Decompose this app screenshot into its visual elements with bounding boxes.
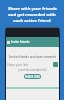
staticText: Invite friends <box>11 40 30 44</box>
staticText: Share your link <box>7 63 29 67</box>
staticText: and get rewarded with <box>8 12 56 18</box>
staticText: yourlink.example/u42 <box>6 68 59 72</box>
staticText: Invite friends and earn rewards <box>6 55 59 59</box>
staticText: each active friend <box>13 18 51 24</box>
staticText: Share with your friends <box>8 6 57 12</box>
staticText: SHARE LINK <box>25 75 40 79</box>
button[interactable]: SHARE LINK <box>24 74 41 79</box>
button[interactable]: Copy link <box>53 62 58 67</box>
